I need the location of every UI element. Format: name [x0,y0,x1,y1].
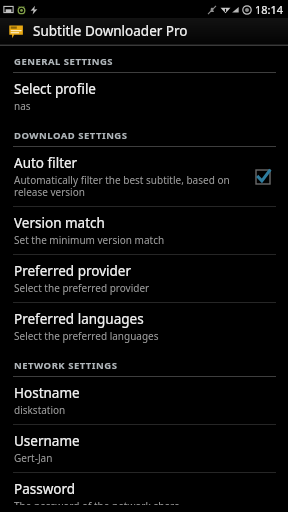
button[interactable]: App icon [0,18,288,44]
staticText: nas [14,99,31,113]
staticText: Password [14,480,76,498]
staticText: Hostname [14,384,80,402]
staticText: Username [14,432,80,450]
staticText: Select the preferred provider [14,281,150,295]
button[interactable]: Version match [0,207,288,254]
staticText: 18:14 [255,2,284,17]
button[interactable]: Preferred provider [0,255,288,302]
button[interactable]: Hostname [0,377,288,424]
staticText: Subtitle Downloader Pro [33,22,188,40]
staticText: Select profile [14,80,96,98]
staticText: Select the preferred languages [14,329,159,343]
staticText: Version match [14,214,105,232]
staticText: Preferred provider [14,262,131,280]
staticText: Gert-Jan [14,451,53,465]
staticText: Set the minimum version match [14,233,165,247]
button[interactable]: Auto filter checkbox, checked [252,166,274,188]
staticText: Auto filter [14,154,78,172]
other: App icon [8,23,24,39]
staticText: GENERAL SETTINGS [14,55,114,68]
button[interactable]: Password [0,473,288,512]
button[interactable]: Username [0,425,288,472]
button[interactable]: Auto filter [0,147,288,206]
button[interactable]: Select profile [0,73,288,120]
staticText: Preferred languages [14,310,144,328]
staticText: DOWNLOAD SETTINGS [14,129,128,142]
staticText: Automatically filter the best subtitle, … [14,173,244,199]
staticText: diskstation [14,403,66,417]
staticText: The password of the network share [14,499,180,505]
staticText: NETWORK SETTINGS [14,359,118,372]
button[interactable]: Preferred languages [0,303,288,350]
